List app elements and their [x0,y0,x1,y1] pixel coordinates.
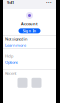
button[interactable]: Sign In [18,28,40,33]
staticText: 9:41 [7,0,14,5]
staticText: Options [5,59,18,65]
staticText: Account [21,21,38,26]
staticText: Recent [5,70,16,76]
staticText: Not signed in [5,36,27,41]
button[interactable]: Learn more [5,42,26,48]
staticText: Help [5,53,13,58]
staticText: ••• [46,0,52,5]
staticText: Learn more [5,42,26,48]
staticText: Sign In [22,28,36,33]
